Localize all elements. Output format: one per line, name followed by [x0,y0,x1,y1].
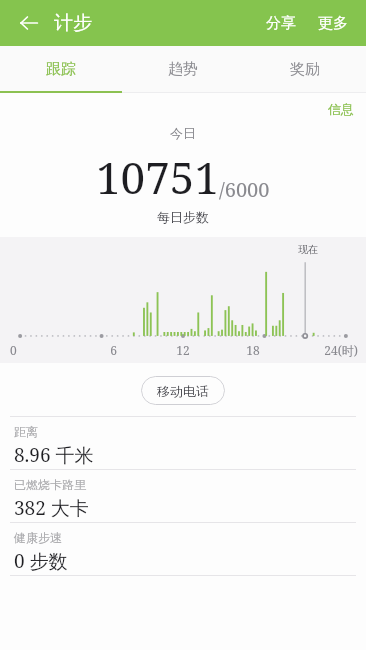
staticText: 12 [148,342,218,358]
staticText: 8.96 千米 [14,442,94,468]
button[interactable]: 更多 [314,8,352,39]
button[interactable]: Back [14,8,44,38]
staticText: 已燃烧卡路里 [14,477,86,492]
staticText: /6000 [219,176,270,203]
button[interactable]: 跟踪 [0,46,122,93]
staticText: 奖励 [290,60,320,79]
staticText: 移动电话 [157,383,209,399]
staticText: 现在 [298,243,318,256]
staticText: 6 [79,342,148,358]
staticText: 18 [218,342,288,358]
staticText: 信息 [328,101,354,117]
staticText: 0 [10,342,79,358]
staticText: 健康步速 [14,530,62,545]
staticText: 今日 [170,125,196,141]
button[interactable]: 趋势 [122,46,244,93]
button[interactable]: 移动电话 [141,376,225,405]
staticText: 距离 [14,424,38,439]
staticText: 10751 [96,147,219,207]
staticText: 计步 [54,11,92,35]
button[interactable]: 健康步速 [0,523,366,575]
button[interactable]: 奖励 [244,46,366,93]
button[interactable]: 分享 [262,8,300,39]
staticText: 每日步数 [157,209,209,225]
button[interactable]: 距离 [0,417,366,469]
staticText: 24(时) [288,342,358,358]
staticText: 跟踪 [46,60,76,79]
staticText: 382 大卡 [14,495,89,521]
button[interactable]: 已燃烧卡路里 [0,470,366,522]
staticText: 分享 [266,14,296,33]
staticText: 更多 [318,14,348,33]
staticText: 趋势 [168,60,198,79]
staticText: 0 步数 [14,548,68,574]
button[interactable]: 信息 [316,99,366,119]
